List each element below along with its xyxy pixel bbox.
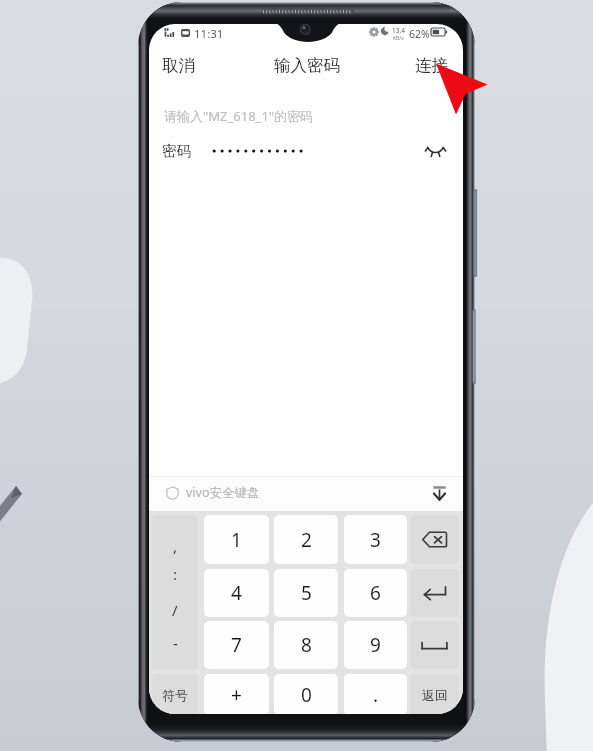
- staticText: 62%: [409, 27, 430, 41]
- button[interactable]: Backspace: [410, 515, 459, 564]
- staticText: 连接: [415, 55, 448, 76]
- button[interactable]: 6: [344, 569, 407, 617]
- staticText: 3: [370, 527, 381, 553]
- button[interactable]: +: [204, 674, 269, 714]
- button[interactable]: 5: [274, 569, 338, 617]
- staticText: ,: [173, 536, 178, 556]
- staticText: 6: [370, 580, 381, 606]
- staticText: :: [173, 564, 178, 584]
- staticText: vivo安全键盘: [186, 484, 260, 501]
- staticText: -: [173, 633, 178, 653]
- staticText: 1: [231, 527, 242, 553]
- button[interactable]: 密码: [149, 137, 463, 165]
- staticText: 取消: [162, 55, 195, 76]
- staticText: 9: [370, 632, 381, 658]
- staticText: 符号: [162, 687, 188, 703]
- staticText: 5: [301, 580, 312, 606]
- button[interactable]: 连接: [396, 50, 463, 81]
- staticText: 返回: [422, 687, 448, 703]
- button[interactable]: 7: [204, 621, 269, 669]
- staticText: 8: [301, 632, 312, 658]
- button[interactable]: 4: [204, 569, 269, 617]
- staticText: 4: [231, 580, 242, 606]
- staticText: 密码: [162, 142, 191, 160]
- staticText: KB/s: [393, 35, 404, 42]
- staticText: .: [373, 682, 379, 708]
- button[interactable]: 3: [344, 515, 407, 564]
- staticText: 13.4: [392, 26, 405, 35]
- button[interactable]: Hide keyboard: [425, 479, 453, 507]
- button[interactable]: Show password: [418, 137, 452, 165]
- button[interactable]: ,: [152, 515, 198, 670]
- staticText: 7: [231, 632, 242, 658]
- button[interactable]: 符号: [152, 674, 198, 714]
- button[interactable]: .: [344, 674, 407, 714]
- staticText: 0: [301, 682, 312, 708]
- button[interactable]: 8: [274, 621, 338, 669]
- staticText: 输入密码: [274, 55, 340, 76]
- button[interactable]: 返回: [410, 674, 459, 714]
- staticText: 2: [301, 527, 312, 553]
- button[interactable]: Space: [410, 621, 459, 669]
- button[interactable]: 1: [204, 515, 269, 564]
- staticText: /: [172, 600, 178, 620]
- button[interactable]: Enter: [410, 569, 459, 617]
- staticText: 11:31: [194, 26, 224, 39]
- staticText: +: [231, 682, 242, 708]
- button[interactable]: 2: [274, 515, 338, 564]
- button[interactable]: 0: [274, 674, 338, 714]
- button[interactable]: 9: [344, 621, 407, 669]
- staticText: 请输入"MZ_618_1"的密码: [164, 107, 314, 125]
- button[interactable]: 取消: [149, 50, 214, 81]
